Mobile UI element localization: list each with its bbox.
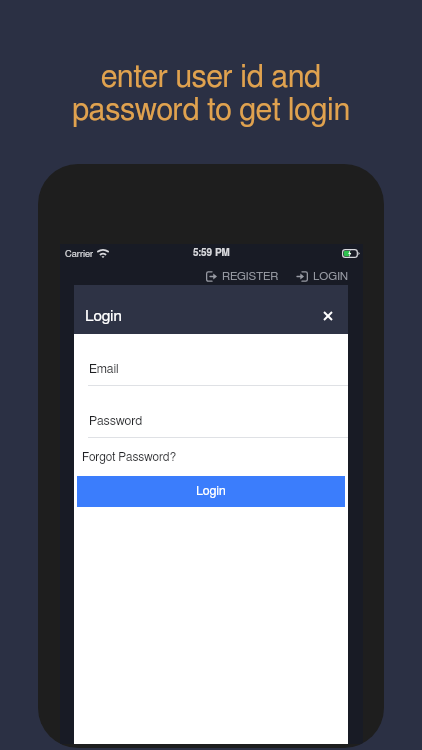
button[interactable]: REGISTER	[203, 271, 282, 282]
staticText: Password	[89, 415, 143, 428]
button[interactable]: Close	[317, 305, 339, 327]
staticText: 5:59 PM	[193, 248, 231, 258]
button[interactable]: LOGIN	[294, 271, 352, 282]
button[interactable]: Login	[77, 476, 345, 507]
staticText: REGISTER	[222, 271, 279, 282]
button[interactable]: Email	[74, 334, 348, 385]
staticText: Login	[85, 309, 122, 325]
staticText: Email	[89, 363, 119, 376]
staticText: Login	[196, 485, 226, 498]
staticText: LOGIN	[313, 271, 349, 282]
button[interactable]: Forgot Password?	[74, 438, 348, 476]
staticText: Carrier	[65, 249, 94, 258]
staticText: Forgot Password?	[82, 451, 177, 463]
staticText: enter user id and password to get login	[0, 63, 422, 126]
button[interactable]: Password	[74, 386, 348, 437]
